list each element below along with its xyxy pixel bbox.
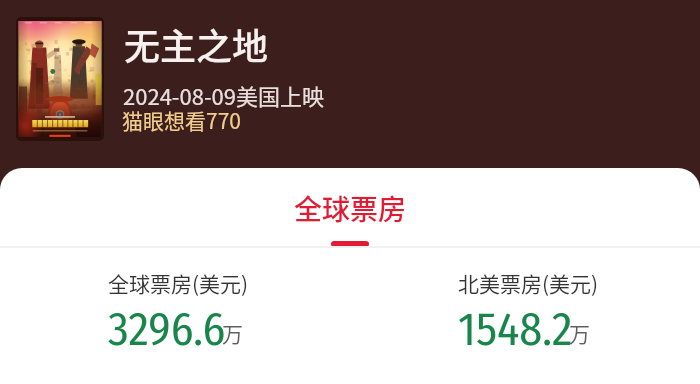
staticText: 北美票房(美元)	[458, 268, 599, 298]
button[interactable]: 猫眼想看770	[122, 105, 241, 135]
staticText: 万	[222, 318, 243, 348]
staticText: 3296.6	[108, 302, 226, 357]
staticText: 全球票房	[294, 188, 407, 229]
staticText: 2024-08-09美国上映	[123, 79, 324, 111]
staticText: 万	[569, 318, 590, 348]
staticText: 无主之地	[124, 18, 269, 70]
staticText: 猫眼想看770	[122, 105, 241, 135]
staticText: 全球票房(美元)	[108, 268, 249, 298]
button[interactable]: 电影海报	[16, 17, 104, 141]
button[interactable]: 全球票房	[0, 188, 700, 247]
staticText: 1548.2	[458, 302, 573, 357]
